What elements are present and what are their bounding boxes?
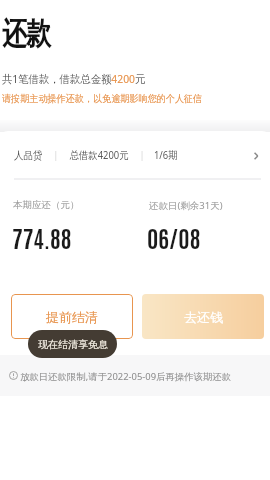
staticText: 现在结清享免息 bbox=[38, 338, 108, 351]
button[interactable]: 人品贷 bbox=[0, 133, 270, 178]
staticText: 人品贷 bbox=[14, 149, 43, 162]
staticText: 共1笔借款，借款总金额4200元 bbox=[2, 71, 146, 86]
staticText: 本期应还（元） bbox=[13, 199, 80, 211]
staticText: 1/6期 bbox=[154, 148, 178, 163]
staticText: 774.88 bbox=[12, 222, 72, 252]
staticText: 还款日(剩余31天) bbox=[149, 199, 223, 212]
other: 查看借款详情 bbox=[252, 152, 260, 160]
button[interactable]: 提前结清 bbox=[11, 294, 133, 339]
staticText: 去还钱 bbox=[184, 309, 223, 325]
staticText: 总借款4200元 bbox=[69, 148, 129, 163]
staticText: 提前结清 bbox=[46, 309, 98, 325]
button[interactable]: 去还钱 bbox=[142, 294, 264, 339]
staticText: 还款 bbox=[2, 14, 51, 53]
staticText: 放款日还款限制,请于2022-05-09后再操作该期还款 bbox=[20, 370, 232, 383]
staticText: 请按期主动操作还款，以免逾期影响您的个人征信 bbox=[2, 92, 202, 105]
staticText: 06/08 bbox=[147, 222, 201, 252]
